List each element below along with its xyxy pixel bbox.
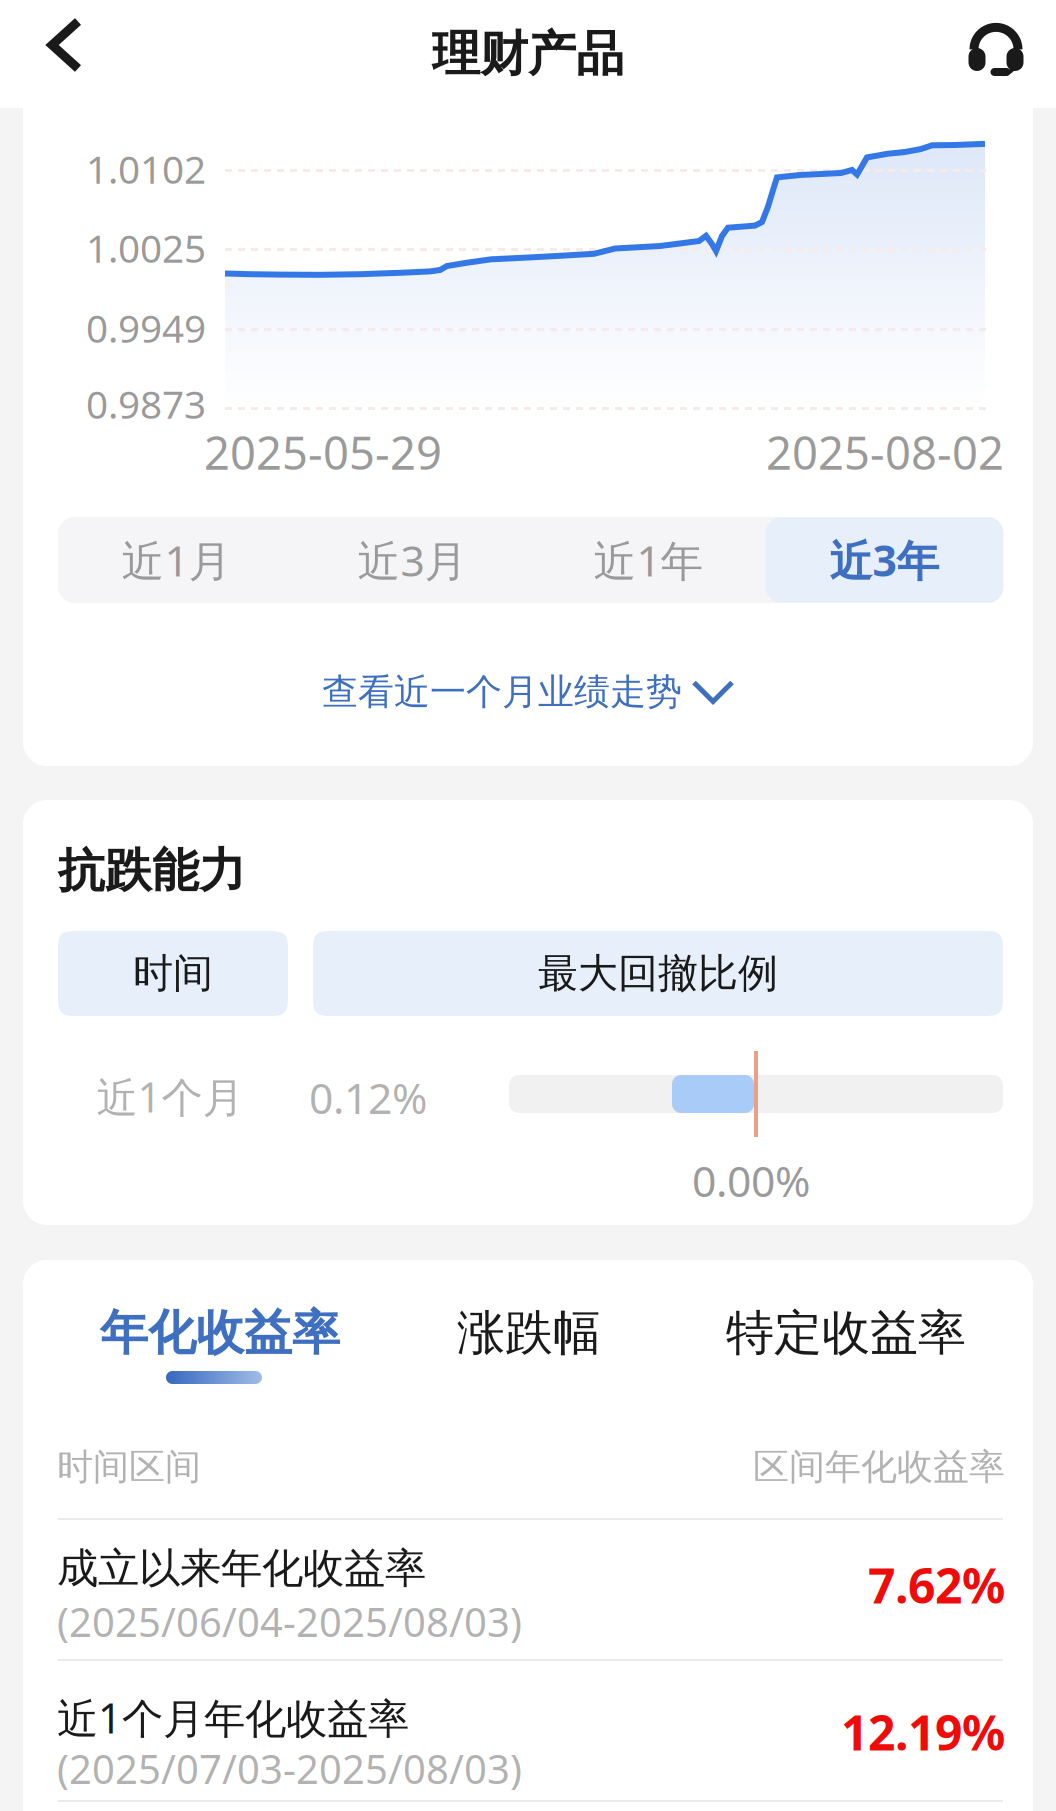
staticText: 0.00% <box>692 1152 810 1209</box>
button[interactable]: 近3年 <box>766 517 1002 603</box>
button[interactable]: 涨跌幅 <box>389 1302 669 1412</box>
staticText: 特定收益率 <box>726 1303 966 1362</box>
staticText: 抗跌能力 <box>58 842 246 899</box>
staticText: 12.19% <box>841 1700 1005 1764</box>
staticText: 时间区间 <box>57 1445 201 1489</box>
staticText: (2025/06/04-2025/08/03) <box>57 1595 522 1648</box>
staticText: 1.0102 <box>86 143 206 194</box>
button[interactable]: 近3月 <box>294 517 530 603</box>
staticText: 2025-08-02 <box>766 422 1004 482</box>
staticText: 近1年 <box>593 532 703 588</box>
button[interactable]: 近1月 <box>58 517 294 603</box>
staticText: 时间 <box>133 949 213 998</box>
button[interactable]: Back <box>0 0 124 108</box>
button[interactable]: 年化收益率 <box>80 1302 360 1412</box>
button[interactable]: Customer service <box>940 0 1052 108</box>
staticText: 理财产品 <box>432 24 624 83</box>
staticText: 0.9873 <box>86 378 206 429</box>
staticText: 查看近一个月业绩走势 <box>322 670 682 714</box>
staticText: 2025-05-29 <box>204 422 442 482</box>
staticText: 近3年 <box>829 532 939 588</box>
staticText: 区间年化收益率 <box>753 1445 1005 1489</box>
staticText: 1.0025 <box>86 222 206 273</box>
staticText: 0.9949 <box>86 302 206 353</box>
button[interactable]: 特定收益率 <box>706 1302 986 1412</box>
staticText: 0.12% <box>309 1069 427 1126</box>
staticText: 年化收益率 <box>100 1303 340 1362</box>
button[interactable]: 近1年 <box>530 517 766 603</box>
staticText: 近3月 <box>357 532 467 588</box>
button[interactable]: 查看近一个月业绩走势 <box>287 646 767 738</box>
staticText: 7.62% <box>868 1553 1005 1617</box>
staticText: 最大回撤比例 <box>538 949 778 998</box>
staticText: 近1个月 <box>96 1069 243 1124</box>
staticText: 涨跌幅 <box>457 1303 601 1362</box>
staticText: 成立以来年化收益率 <box>57 1543 426 1594</box>
staticText: 近1月 <box>121 532 231 588</box>
staticText: 近1个月年化收益率 <box>57 1690 409 1745</box>
staticText: (2025/07/03-2025/08/03) <box>57 1742 522 1795</box>
